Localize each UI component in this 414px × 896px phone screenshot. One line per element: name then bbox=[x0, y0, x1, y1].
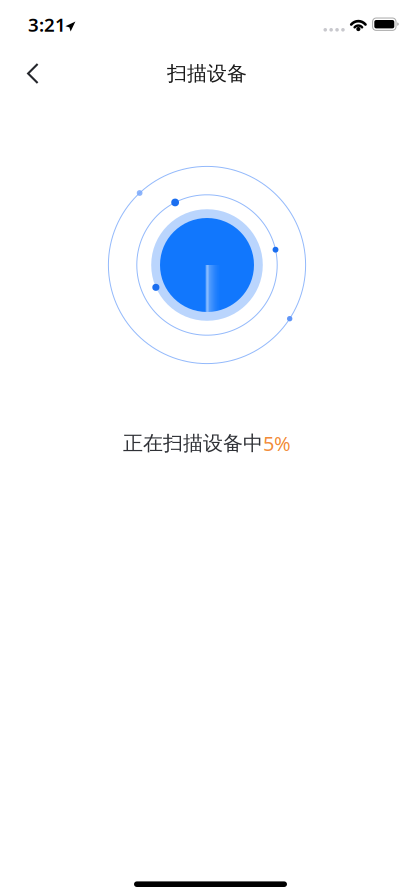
button[interactable]: Back bbox=[0, 47, 55, 94]
staticText: 5% bbox=[263, 430, 291, 457]
staticText: 扫描设备 bbox=[167, 61, 247, 86]
staticText: 3:21 bbox=[28, 12, 66, 37]
staticText: 正在扫描设备中 bbox=[123, 431, 263, 456]
